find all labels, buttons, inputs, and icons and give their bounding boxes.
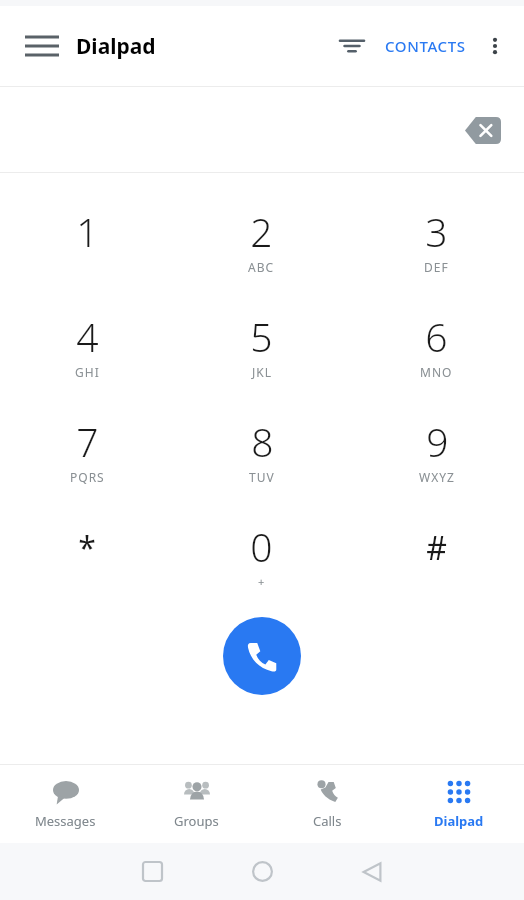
button[interactable]: 1 <box>0 187 174 292</box>
staticText: + <box>258 574 266 589</box>
staticText: 0 <box>250 520 273 573</box>
staticText: Dialpad <box>434 812 484 830</box>
staticText: 7 <box>76 415 99 468</box>
button[interactable]: 7 <box>0 397 174 502</box>
staticText: Calls <box>313 812 342 830</box>
button[interactable]: Messages <box>0 765 131 843</box>
button[interactable]: 4 <box>0 292 174 397</box>
staticText: * <box>78 526 96 570</box>
button[interactable]: CONTACTS <box>379 28 472 64</box>
button[interactable]: 2 <box>174 187 349 292</box>
button[interactable]: 3 <box>349 187 524 292</box>
button[interactable]: Home <box>233 843 291 900</box>
staticText: # <box>426 526 447 570</box>
button[interactable]: 5 <box>174 292 349 397</box>
staticText: 9 <box>426 415 449 468</box>
button[interactable]: Call <box>223 617 301 695</box>
staticText: Dialpad <box>76 32 156 61</box>
button[interactable]: 6 <box>349 292 524 397</box>
staticText: Groups <box>174 812 219 830</box>
button[interactable]: More options <box>472 23 518 69</box>
staticText: GHI <box>75 364 100 380</box>
staticText: 3 <box>425 205 448 258</box>
button[interactable]: Filter <box>329 23 375 69</box>
staticText: 8 <box>251 415 274 468</box>
staticText: 5 <box>250 310 273 363</box>
button[interactable]: 8 <box>174 397 349 502</box>
staticText: JKL <box>252 364 272 380</box>
staticText: 6 <box>425 310 448 363</box>
staticText: WXYZ <box>419 469 455 485</box>
button[interactable]: * <box>0 502 174 607</box>
button[interactable]: Back <box>343 843 401 900</box>
button[interactable]: Backspace <box>456 103 510 157</box>
staticText: 4 <box>76 310 99 363</box>
button[interactable]: Calls <box>262 765 393 843</box>
staticText: TUV <box>249 469 275 485</box>
button[interactable]: Recents <box>123 843 181 900</box>
button[interactable]: Groups <box>131 765 262 843</box>
button[interactable]: 9 <box>349 397 524 502</box>
staticText: 2 <box>250 205 273 258</box>
staticText: Messages <box>35 812 96 830</box>
staticText: ABC <box>248 259 275 275</box>
staticText: MNO <box>420 364 453 380</box>
staticText: CONTACTS <box>385 36 466 56</box>
staticText: PQRS <box>70 469 105 485</box>
button[interactable]: Menu <box>18 22 66 70</box>
button[interactable]: 0 <box>174 502 349 607</box>
button[interactable]: Dialpad <box>393 765 524 843</box>
button[interactable]: # <box>349 502 524 607</box>
staticText: DEF <box>424 259 449 275</box>
staticText: 1 <box>76 205 99 258</box>
